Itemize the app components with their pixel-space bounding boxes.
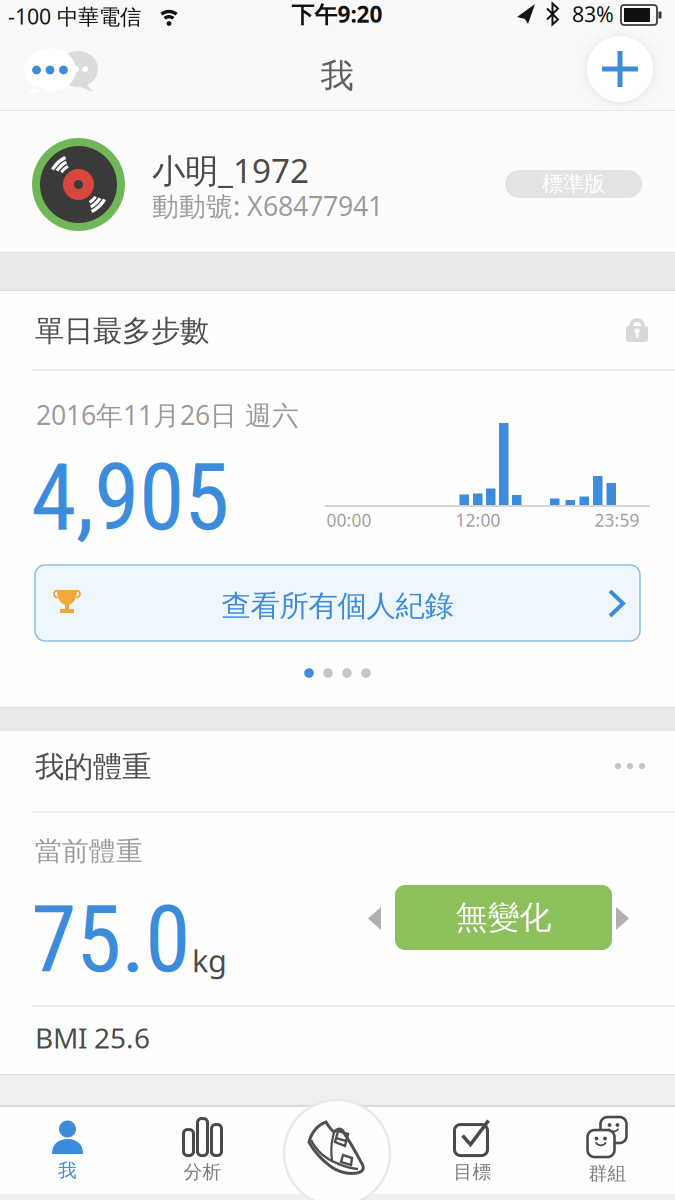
button[interactable]: More options bbox=[606, 754, 654, 778]
button[interactable]: 分析 bbox=[135, 1109, 270, 1193]
staticText: 我的體重 bbox=[35, 749, 151, 785]
staticText: 2016年11月26日 週六 bbox=[36, 397, 299, 432]
button[interactable]: Previous bbox=[368, 907, 382, 931]
button[interactable]: Messages bbox=[12, 42, 104, 100]
button[interactable]: 無變化 bbox=[395, 885, 612, 950]
button[interactable]: Activity bbox=[270, 1109, 405, 1193]
staticText: 下午9:20 bbox=[291, 0, 382, 29]
button[interactable]: 查看所有個人紀錄 bbox=[35, 565, 640, 641]
staticText: 動動號: X68477941 bbox=[152, 188, 383, 223]
button[interactable]: 群組 bbox=[540, 1109, 675, 1193]
staticText: 群組 bbox=[588, 1162, 626, 1185]
staticText: kg bbox=[192, 940, 227, 981]
staticText: 12:00 bbox=[455, 508, 500, 531]
button[interactable]: Add bbox=[587, 36, 653, 102]
staticText: 目標 bbox=[453, 1160, 491, 1183]
staticText: 75.0 bbox=[31, 886, 190, 994]
staticText: BMI 25.6 bbox=[35, 1019, 150, 1056]
staticText: 小明_1972 bbox=[152, 148, 309, 192]
button[interactable]: Activity bbox=[284, 1100, 390, 1200]
staticText: 當前體重 bbox=[35, 835, 143, 868]
staticText: 無變化 bbox=[455, 898, 551, 937]
staticText: 我 bbox=[320, 55, 353, 96]
staticText: 分析 bbox=[183, 1160, 221, 1183]
staticText: 單日最多步數 bbox=[35, 313, 209, 349]
staticText: 23:59 bbox=[594, 508, 639, 531]
button[interactable]: Next bbox=[616, 907, 630, 931]
button[interactable]: 目標 bbox=[405, 1109, 540, 1193]
button[interactable]: 小明_1972 bbox=[0, 111, 675, 252]
staticText: 4,905 bbox=[31, 444, 229, 552]
staticText: -100 中華電信 bbox=[8, 2, 141, 30]
staticText: 我 bbox=[58, 1159, 77, 1182]
staticText: 00:00 bbox=[326, 508, 371, 531]
staticText: 查看所有個人紀錄 bbox=[221, 588, 453, 624]
button[interactable]: 我 bbox=[0, 1109, 135, 1193]
staticText: 標準版 bbox=[542, 171, 605, 197]
staticText: 83% bbox=[572, 0, 614, 28]
